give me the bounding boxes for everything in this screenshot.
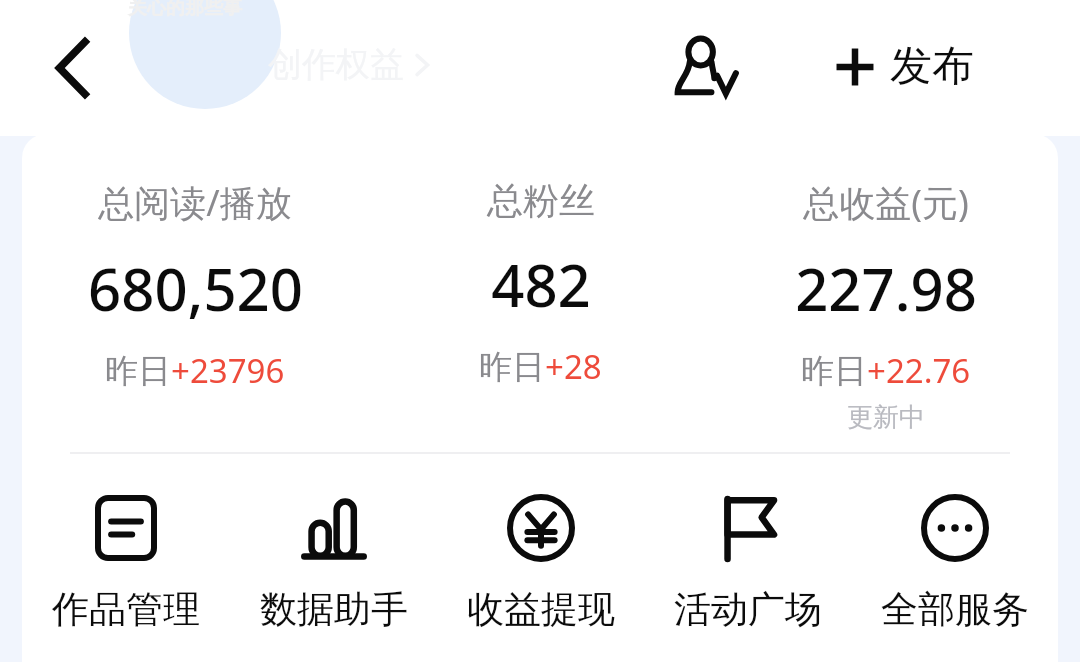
button[interactable]: 发布: [834, 40, 974, 93]
staticText: 昨日: [105, 350, 171, 392]
staticText: 总收益(元): [803, 178, 969, 227]
staticText: 全部服务: [881, 586, 1029, 633]
staticText: 更新中: [847, 401, 925, 434]
staticText: 680,520: [88, 249, 303, 328]
staticText: 482: [491, 245, 591, 324]
staticText: +22.76: [867, 348, 971, 393]
staticText: 创作权益: [268, 43, 404, 86]
button[interactable]: 收益提现: [437, 494, 644, 633]
staticText: 昨日: [479, 346, 545, 388]
button[interactable]: 总阅读/播放: [22, 134, 368, 393]
staticText: 发布: [890, 40, 974, 93]
staticText: 作品管理: [52, 586, 200, 633]
staticText: 活动广场: [674, 586, 822, 633]
button[interactable]: 总粉丝: [368, 134, 713, 389]
button[interactable]: 创作权益: [268, 43, 432, 86]
button[interactable]: 活动广场: [644, 494, 851, 633]
button[interactable]: Back: [34, 29, 112, 107]
button[interactable]: Switch account: [660, 23, 760, 113]
staticText: 关心的那些事: [128, 0, 242, 20]
button[interactable]: 总收益(元): [713, 134, 1058, 434]
staticText: +23796: [171, 348, 285, 393]
staticText: 昨日: [801, 350, 867, 392]
button[interactable]: 全部服务: [851, 494, 1058, 633]
staticText: 总阅读/播放: [98, 178, 292, 227]
staticText: 总粉丝: [487, 178, 595, 223]
staticText: +28: [545, 344, 602, 389]
staticText: 收益提现: [467, 586, 615, 633]
button[interactable]: 数据助手: [230, 494, 437, 633]
staticText: 数据助手: [260, 586, 408, 633]
staticText: 227.98: [795, 249, 977, 328]
button[interactable]: 作品管理: [22, 494, 230, 633]
